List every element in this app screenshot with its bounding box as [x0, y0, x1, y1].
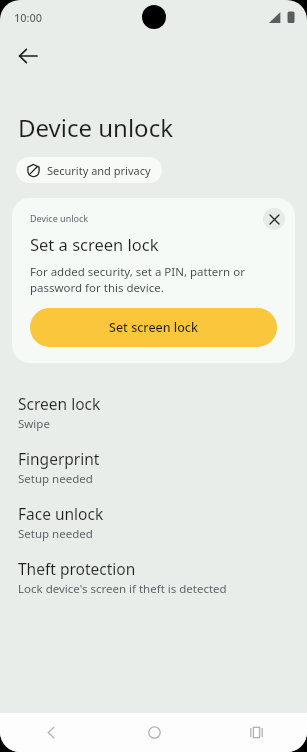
button[interactable]: Security and privacy	[16, 157, 162, 183]
staticText: Device unlock	[30, 212, 89, 224]
staticText: For added security, set a PIN, pattern o…	[30, 264, 277, 295]
button[interactable]: Home	[103, 713, 205, 752]
staticText: Security and privacy	[47, 163, 151, 178]
button[interactable]: Set screen lock	[30, 308, 277, 347]
staticText: Set screen lock	[109, 319, 198, 336]
staticText: Set a screen lock	[30, 233, 159, 255]
button[interactable]: Recent apps	[205, 713, 307, 752]
staticText: Theft protection	[18, 558, 136, 579]
staticText: Setup needed	[18, 526, 93, 542]
staticText: Fingerprint	[18, 448, 100, 469]
button[interactable]: Back	[0, 713, 103, 752]
staticText: 10:00	[14, 10, 43, 25]
staticText: Screen lock	[18, 393, 101, 414]
button[interactable]: Theft protection	[0, 550, 307, 605]
button[interactable]: Fingerprint	[0, 440, 307, 495]
staticText: Setup needed	[18, 471, 93, 487]
staticText: Face unlock	[18, 503, 104, 524]
staticText: Swipe	[18, 416, 50, 432]
button[interactable]: Dismiss	[263, 208, 285, 230]
staticText: Lock device's screen if theft is detecte…	[18, 581, 227, 597]
button[interactable]: Back	[6, 34, 50, 78]
staticText: Device unlock	[18, 111, 173, 144]
button[interactable]: Face unlock	[0, 495, 307, 550]
button[interactable]: Screen lock	[0, 385, 307, 440]
